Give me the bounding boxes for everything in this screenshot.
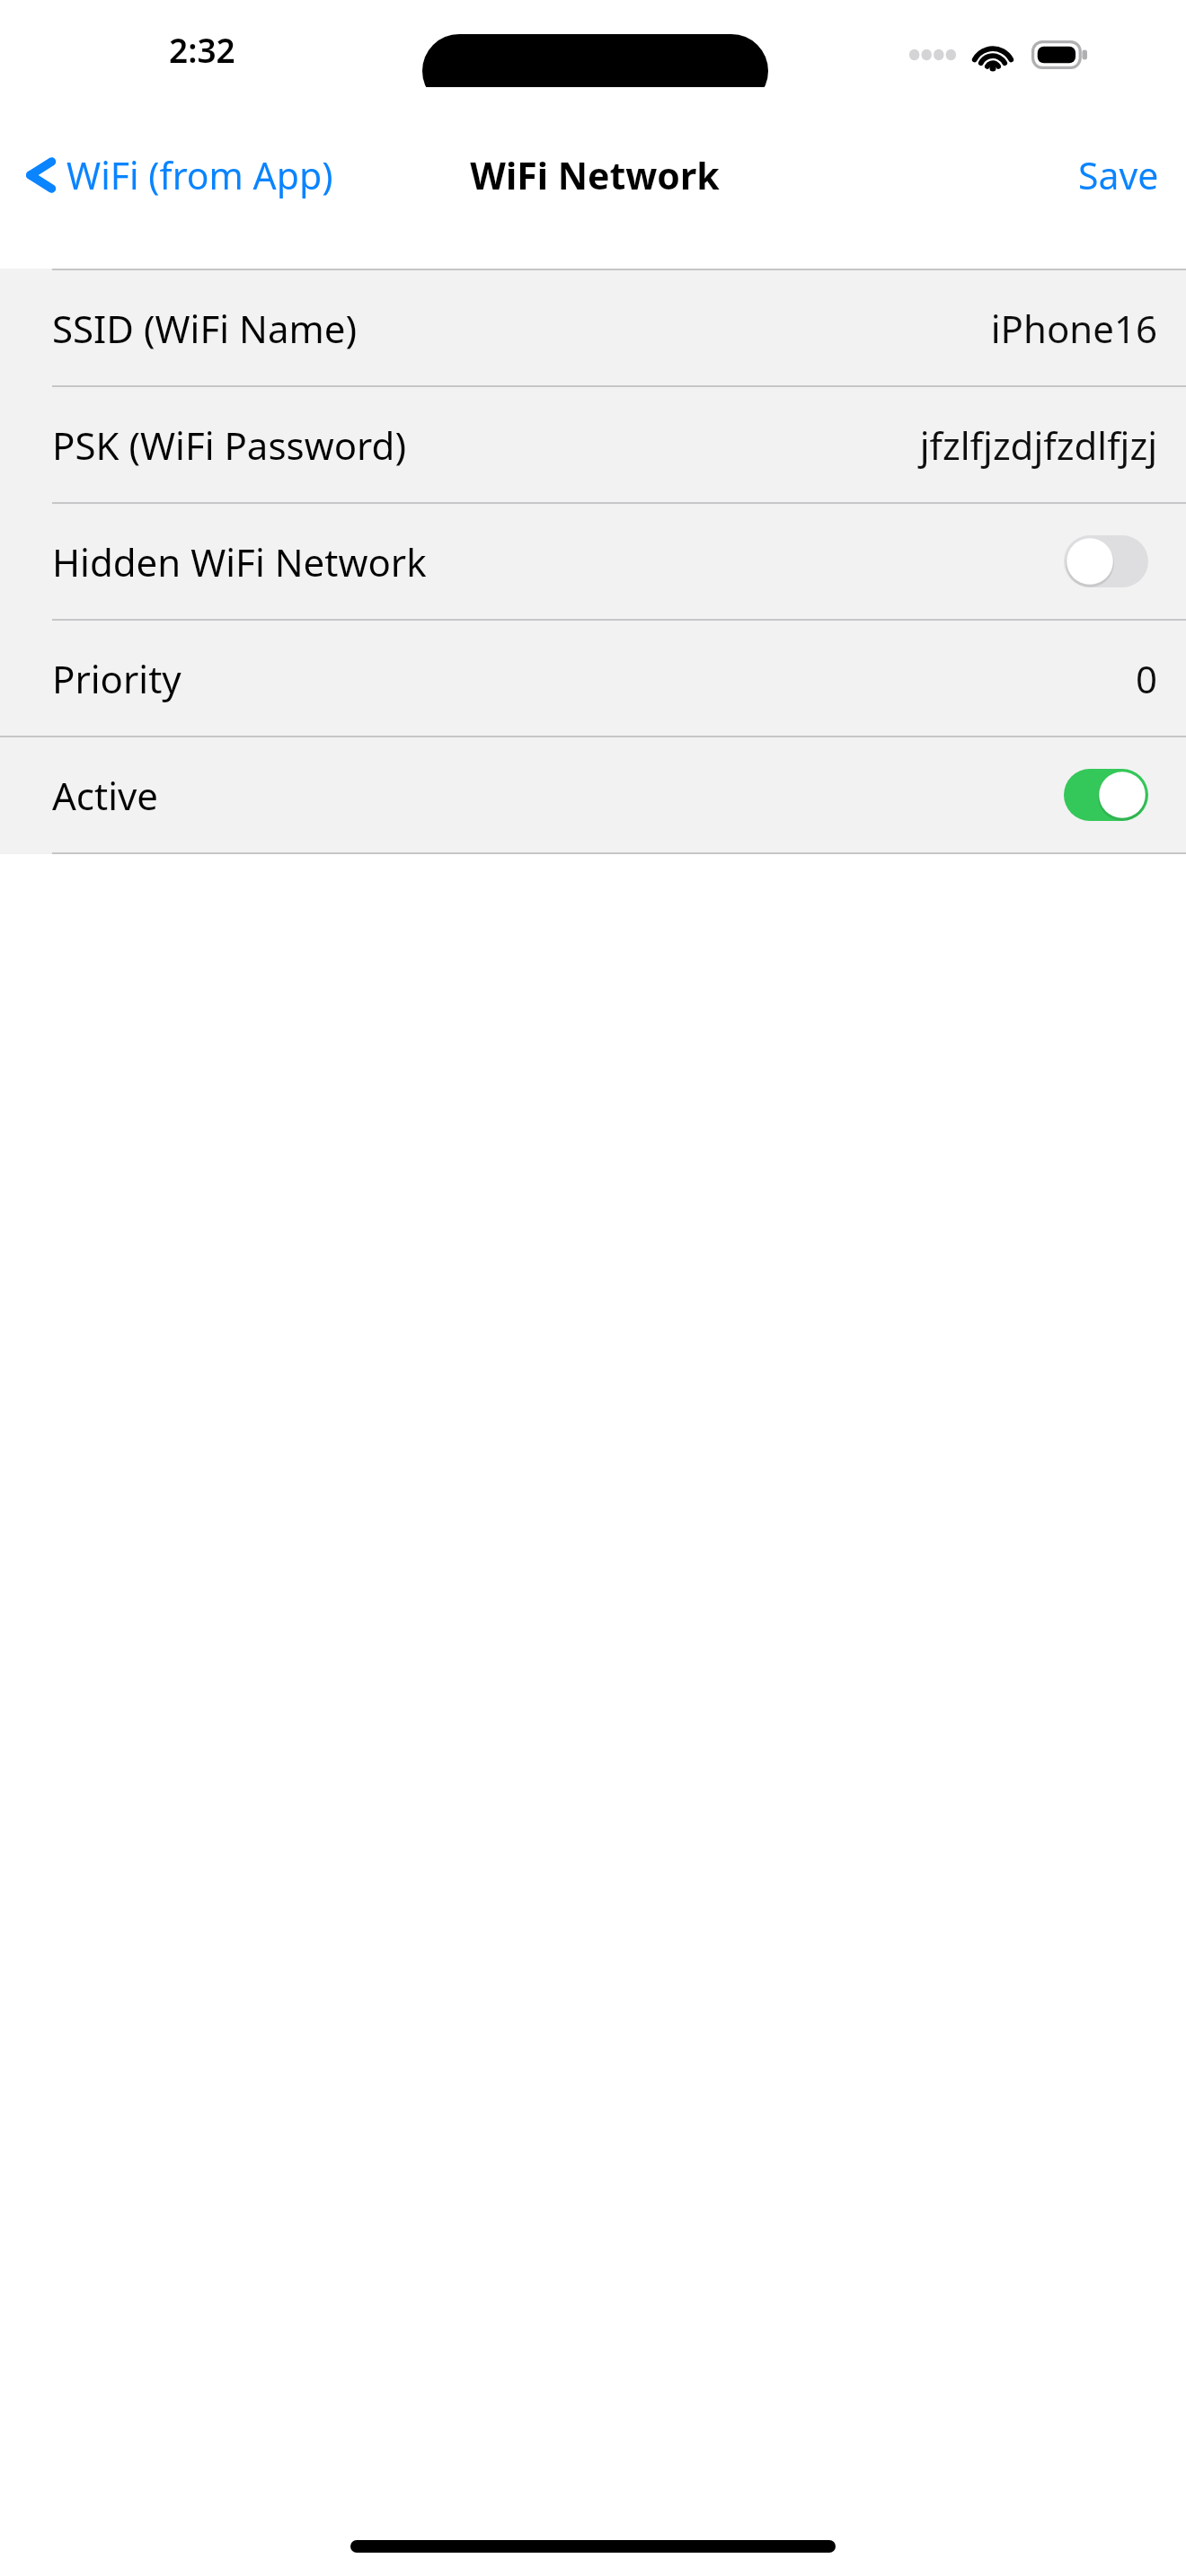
button[interactable]: WiFi (from App): [0, 137, 350, 213]
staticText: iPhone16: [990, 303, 1157, 354]
staticText: WiFi Network: [470, 150, 720, 200]
staticText: jfzlfjzdjfzdlfjzj: [919, 419, 1157, 471]
staticText: Save: [1078, 150, 1159, 200]
button[interactable]: Active: [1064, 769, 1148, 821]
staticText: Hidden WiFi Network: [52, 536, 427, 587]
staticText: 0: [1135, 653, 1157, 704]
button[interactable]: Active: [0, 737, 1186, 852]
staticText: PSK (WiFi Password): [52, 419, 407, 471]
staticText: SSID (WiFi Name): [52, 303, 358, 354]
staticText: Active: [52, 770, 159, 821]
button[interactable]: PSK (WiFi Password): [0, 387, 1186, 502]
staticText: WiFi (from App): [66, 150, 333, 200]
button[interactable]: Save: [1051, 136, 1186, 215]
staticText: Priority: [52, 653, 181, 704]
staticText: 2:32: [169, 27, 235, 72]
button[interactable]: Hidden WiFi Network: [0, 504, 1186, 619]
button[interactable]: Priority: [0, 621, 1186, 736]
button[interactable]: Hidden WiFi Network: [1064, 535, 1148, 587]
button[interactable]: SSID (WiFi Name): [0, 270, 1186, 385]
